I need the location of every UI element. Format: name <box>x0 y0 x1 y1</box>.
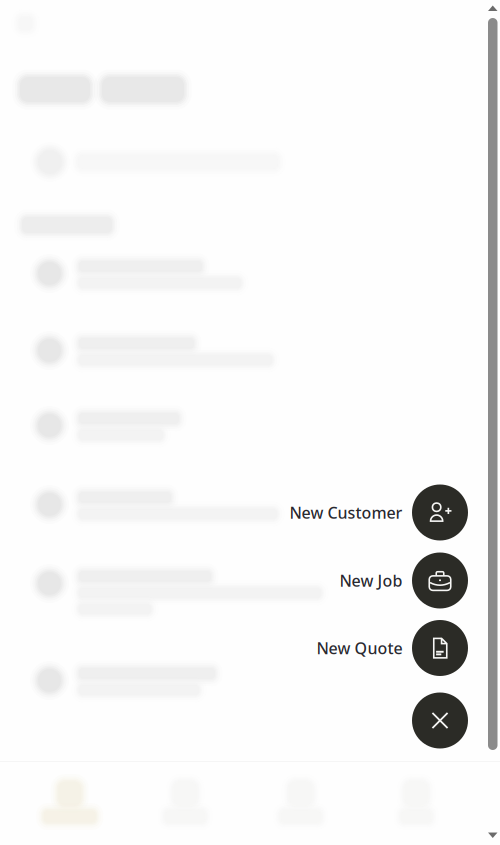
button[interactable]: Schedule <box>127 776 243 828</box>
button[interactable]: More <box>358 776 474 828</box>
button[interactable]: Close menu <box>412 692 468 748</box>
button[interactable]: New Quote <box>0 620 500 676</box>
button[interactable]: New Job <box>0 552 500 608</box>
staticText: New Quote <box>316 637 402 659</box>
staticText: New Job <box>339 570 402 591</box>
button[interactable]: Today <box>12 776 127 828</box>
staticText: New Customer <box>289 502 402 523</box>
button[interactable]: New Customer <box>0 484 500 540</box>
button[interactable]: Customers <box>243 776 358 828</box>
